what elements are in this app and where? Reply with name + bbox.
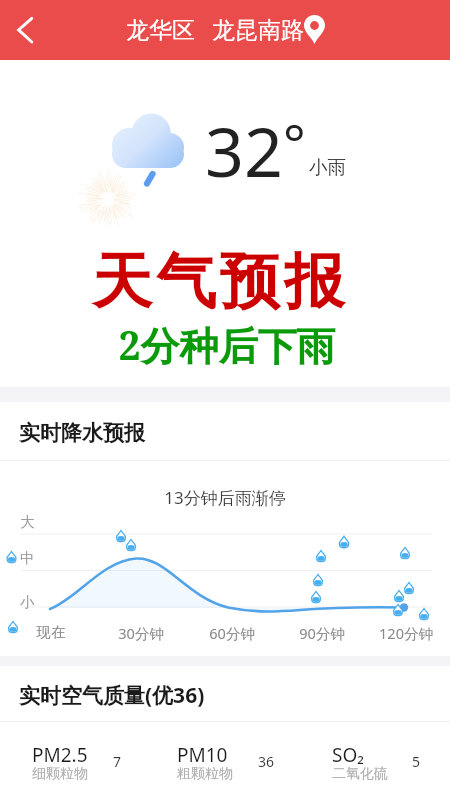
staticText: 小 — [20, 593, 35, 611]
staticText: 32 — [205, 104, 283, 197]
staticText: 大 — [20, 513, 35, 531]
button[interactable]: PM10 — [167, 740, 297, 792]
staticText: 天气预报 — [0, 244, 445, 320]
staticText: 实时空气质量(优36) — [19, 681, 205, 710]
staticText: ° — [283, 106, 306, 178]
staticText: 60分钟 — [192, 623, 272, 643]
button[interactable]: PM2.5 — [22, 740, 152, 792]
staticText: 120分钟 — [366, 623, 446, 643]
staticText: 36 — [258, 752, 275, 771]
staticText: 中 — [20, 549, 35, 567]
staticText: 90分钟 — [282, 623, 362, 643]
staticText: 实时降水预报 — [19, 420, 145, 446]
button[interactable]: 龙华区 — [0, 0, 450, 60]
staticText: SO₂ — [332, 742, 364, 768]
staticText: 细颗粒物 — [32, 765, 88, 783]
staticText: 现在 — [11, 623, 91, 641]
staticText: 龙华区 — [126, 16, 195, 45]
button[interactable]: Back — [2, 8, 48, 54]
button[interactable]: SO₂ — [322, 740, 450, 792]
staticText: PM2.5 — [32, 742, 88, 768]
staticText: 7 — [113, 752, 122, 771]
staticText: 5 — [412, 752, 421, 771]
staticText: 小雨 — [309, 156, 346, 179]
staticText: 30分钟 — [101, 623, 181, 643]
staticText: 13分钟后雨渐停 — [0, 486, 450, 509]
staticText: 龙昆南路 — [212, 16, 304, 45]
staticText: 粗颗粒物 — [177, 765, 233, 783]
staticText: 2分种后下雨 — [2, 318, 450, 371]
staticText: 二氧化硫 — [332, 765, 388, 783]
staticText: PM10 — [177, 742, 228, 768]
